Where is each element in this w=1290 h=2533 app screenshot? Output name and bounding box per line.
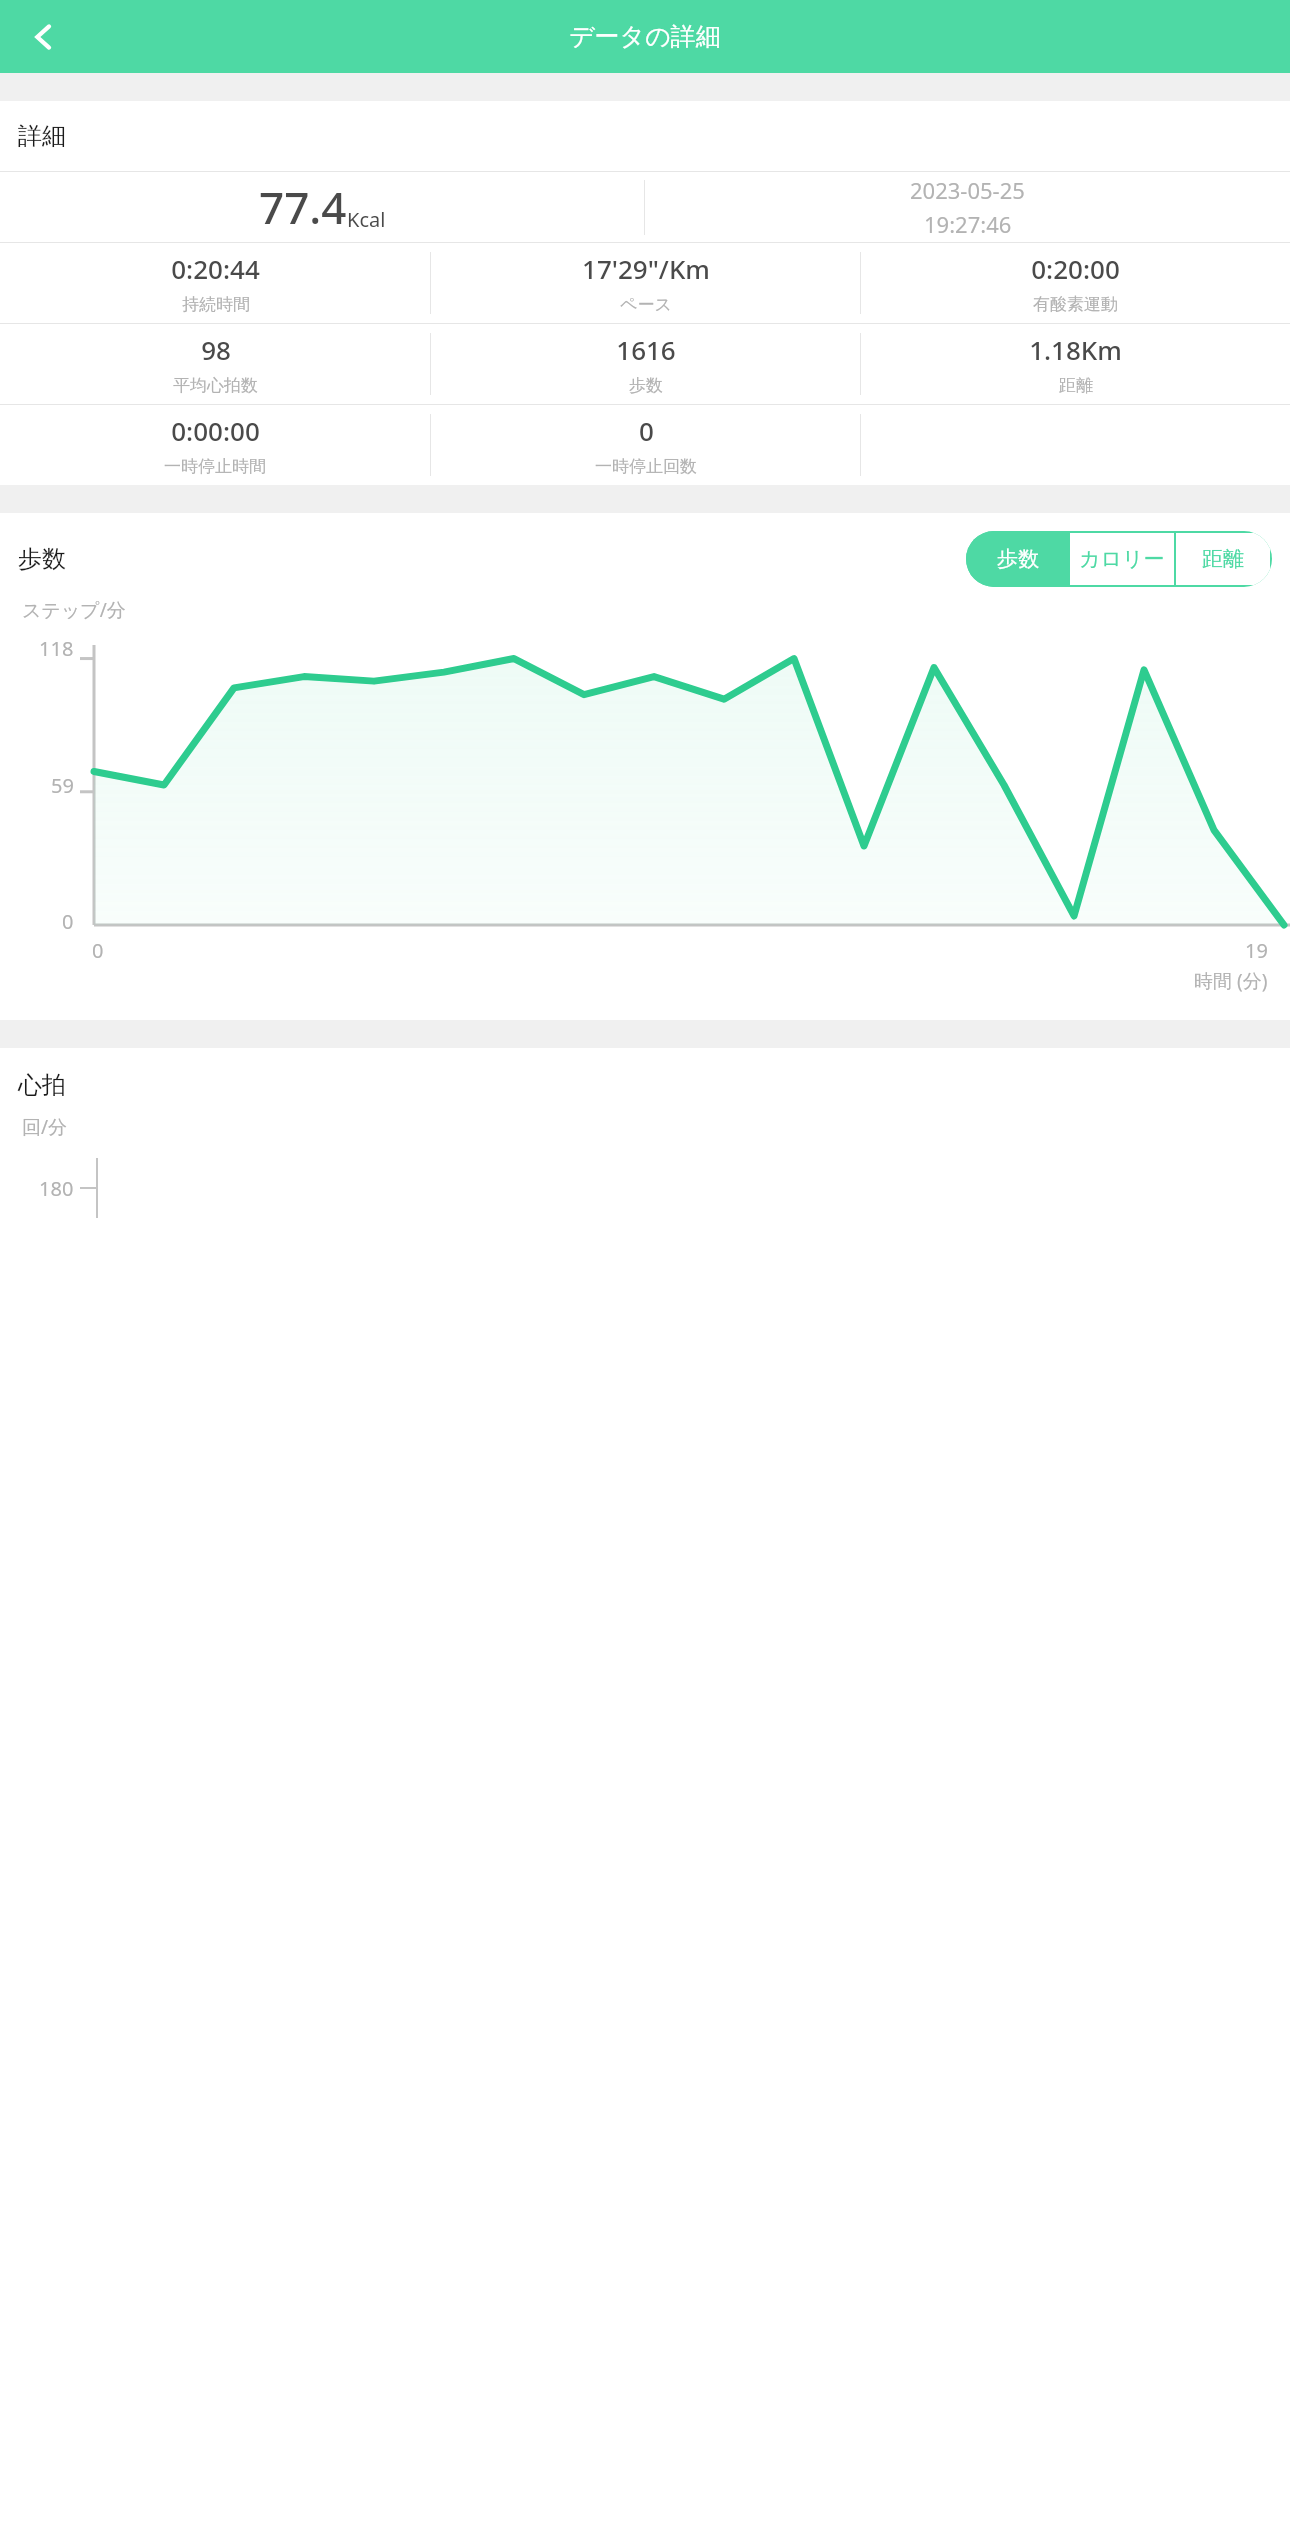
button[interactable]: Back: [16, 9, 72, 65]
staticText: 1.18Km: [1029, 332, 1122, 367]
staticText: ペース: [620, 294, 672, 315]
staticText: 平均心拍数: [173, 375, 258, 396]
staticText: 回/分: [22, 1114, 68, 1140]
staticText: 心拍: [18, 1070, 66, 1100]
staticText: 17'29"/Km: [582, 251, 710, 286]
staticText: 時間 (分): [1194, 968, 1268, 994]
staticText: 0:20:00: [1031, 251, 1120, 286]
staticText: カロリー: [1079, 546, 1165, 572]
staticText: 77.4: [259, 177, 347, 237]
staticText: Kcal: [347, 206, 386, 233]
staticText: 歩数: [997, 546, 1039, 572]
staticText: 19: [1245, 937, 1268, 964]
staticText: 180: [39, 1175, 74, 1202]
staticText: 有酸素運動: [1033, 294, 1118, 315]
staticText: 0:20:44: [171, 251, 260, 286]
staticText: 一時停止回数: [595, 456, 697, 477]
staticText: 距離: [1202, 546, 1244, 572]
button[interactable]: 歩数: [966, 531, 1070, 587]
button[interactable]: カロリー: [1070, 533, 1174, 585]
staticText: 0: [62, 908, 74, 935]
staticText: 0: [92, 937, 104, 964]
staticText: 歩数: [18, 544, 66, 574]
staticText: 2023-05-25: [910, 175, 1025, 205]
staticText: 98: [201, 332, 231, 367]
button[interactable]: 距離: [1176, 533, 1270, 585]
staticText: データの詳細: [569, 21, 721, 52]
staticText: 118: [39, 635, 74, 662]
staticText: 距離: [1059, 375, 1093, 396]
staticText: 一時停止時間: [164, 456, 266, 477]
staticText: 1616: [616, 332, 676, 367]
staticText: 19:27:46: [924, 209, 1012, 239]
staticText: 歩数: [629, 375, 663, 396]
staticText: 59: [51, 772, 74, 799]
staticText: 0: [639, 413, 654, 448]
staticText: 0:00:00: [171, 413, 260, 448]
staticText: ステップ/分: [22, 597, 126, 623]
staticText: 詳細: [18, 121, 66, 151]
staticText: 持続時間: [182, 294, 250, 315]
